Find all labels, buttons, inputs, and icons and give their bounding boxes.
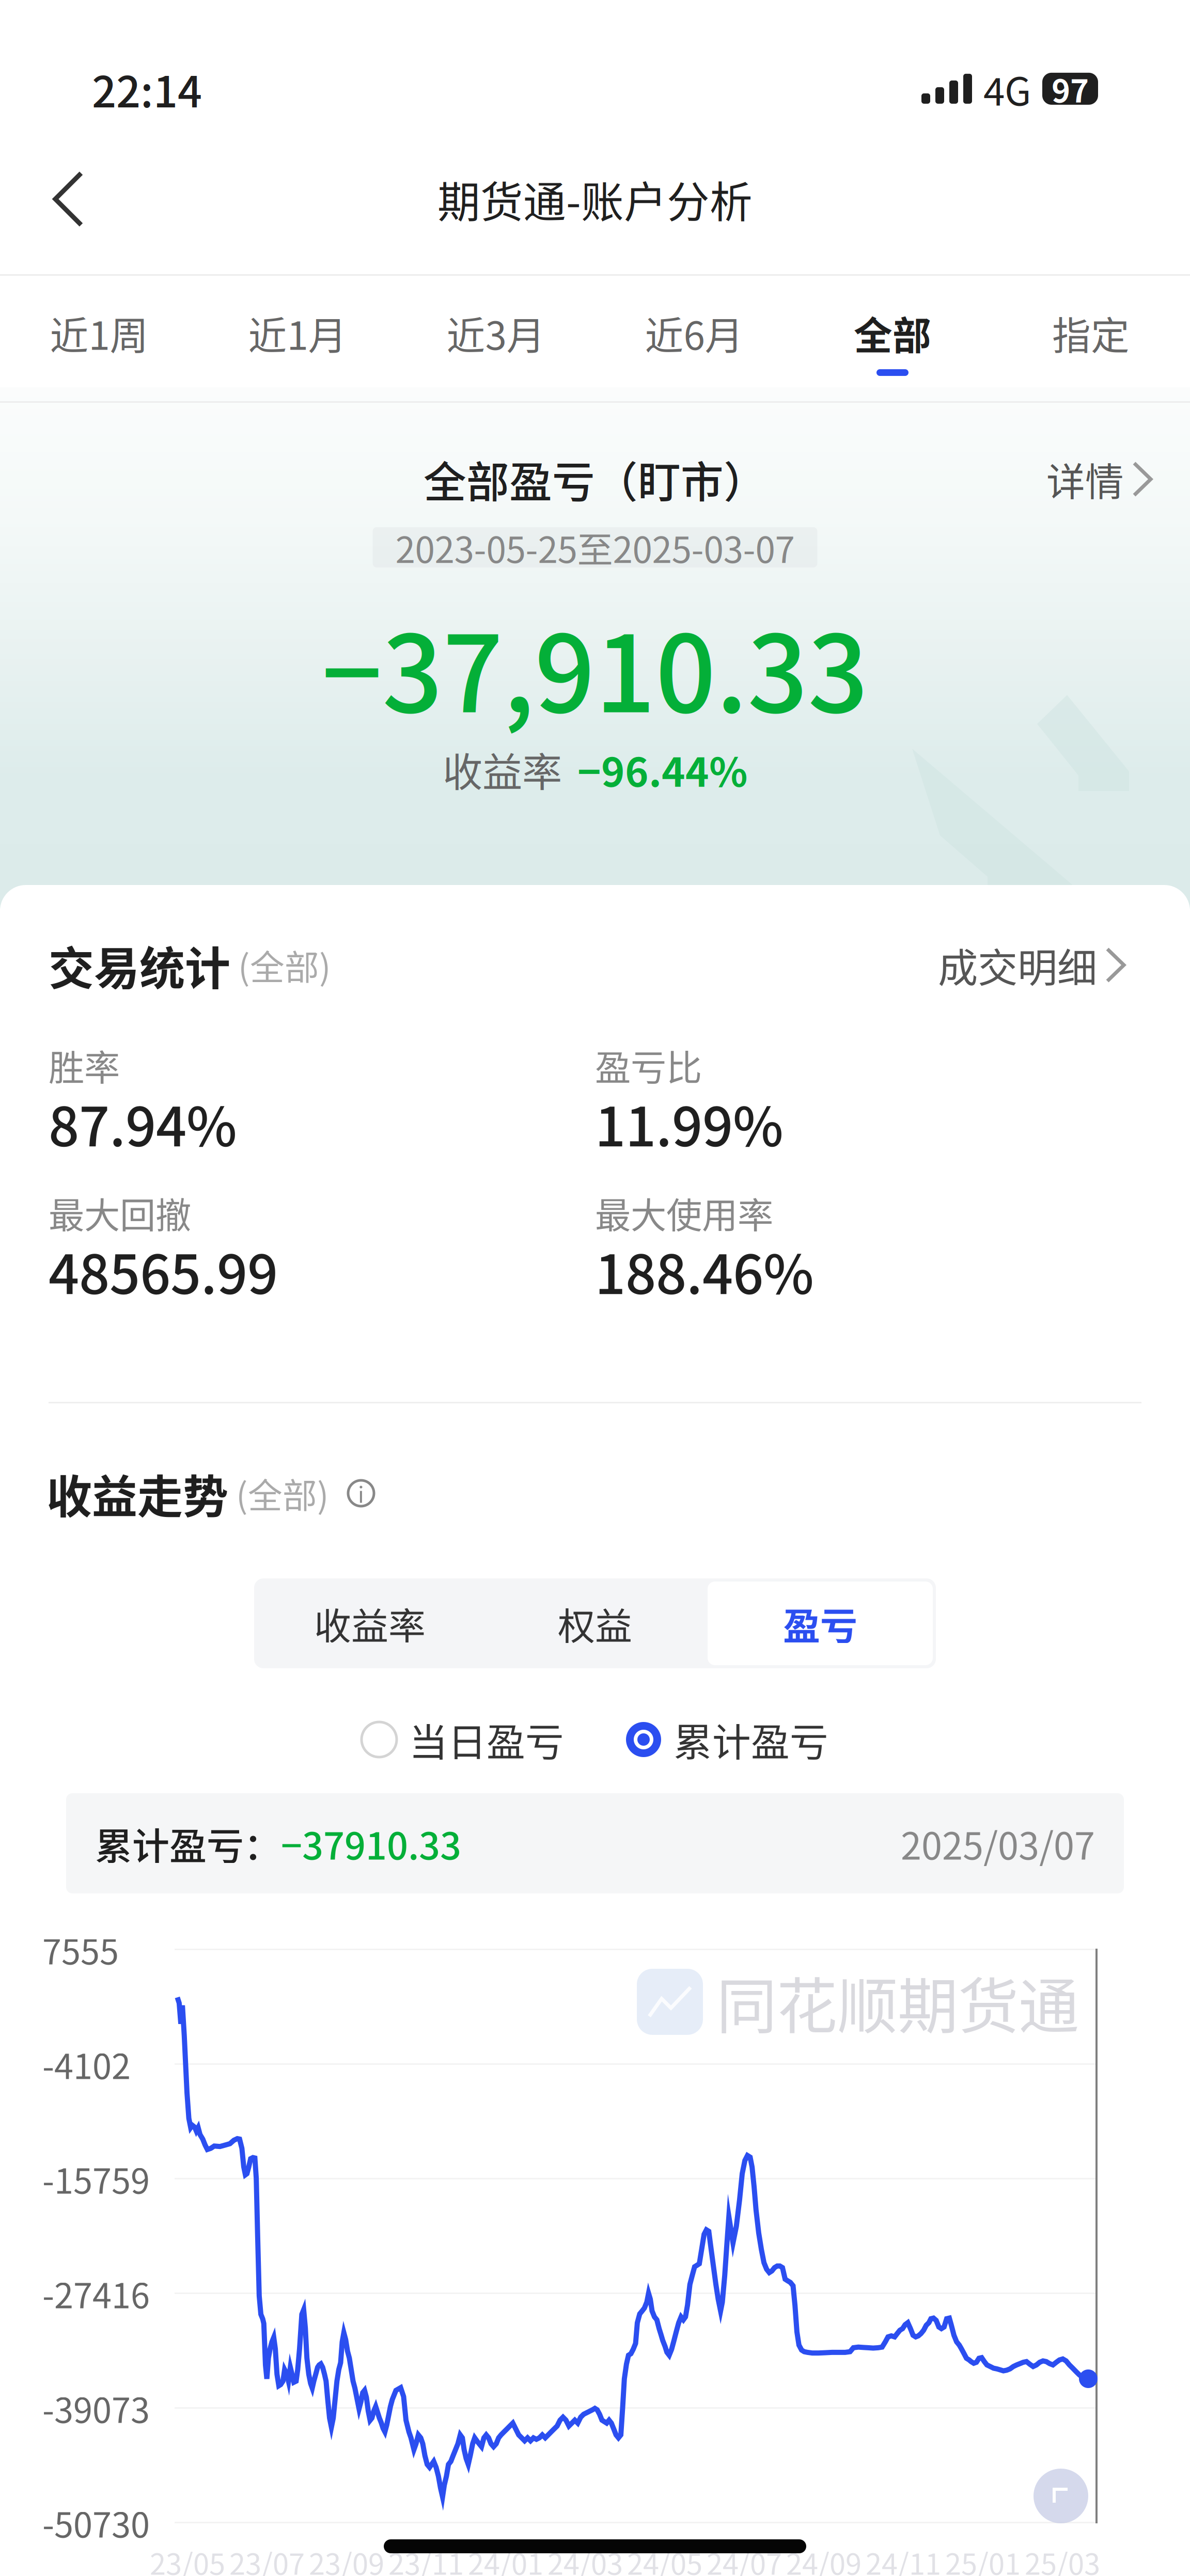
button[interactable]: 成交明细	[938, 928, 1124, 1002]
button[interactable]: 详情	[1046, 444, 1190, 514]
staticText: 指定	[1052, 305, 1130, 361]
staticText: 累计盈亏：	[95, 1816, 281, 1870]
staticText: 24/05	[627, 2541, 702, 2576]
staticText: 23/07	[229, 2541, 305, 2576]
staticText: 收益走势	[46, 1460, 228, 1526]
staticText: 近3月	[447, 305, 545, 361]
staticText: 当日盈亏	[409, 1712, 564, 1767]
staticText: 87.94%	[49, 1084, 237, 1162]
button[interactable]: 近3月	[397, 287, 595, 390]
staticText: 48565.99	[49, 1232, 278, 1310]
staticText: (全部)	[228, 1468, 329, 1518]
staticText: 188.46%	[595, 1232, 814, 1310]
staticText: 期货通-账户分析	[437, 168, 753, 230]
staticText: 23/05	[150, 2541, 225, 2576]
staticText: 23/11	[388, 2541, 464, 2576]
staticText: 24/11	[866, 2541, 941, 2576]
button[interactable]: 收益率	[257, 1582, 482, 1665]
staticText: 25/03	[1025, 2541, 1100, 2576]
staticText: 近6月	[645, 305, 743, 361]
button[interactable]: 近1月	[198, 287, 397, 390]
staticText: 2023-05-25至2025-03-07	[395, 521, 795, 573]
staticText: 4G	[983, 61, 1031, 117]
staticText: 24/07	[707, 2541, 782, 2576]
staticText: 全部盈亏（盯市）	[424, 448, 766, 510]
staticText: 24/09	[786, 2541, 862, 2576]
staticText: 收益率	[314, 1596, 426, 1650]
staticText: -27416	[42, 2268, 150, 2318]
staticText: −96.44%	[577, 740, 747, 798]
button[interactable]: Back	[32, 163, 104, 235]
staticText: 11.99%	[595, 1084, 784, 1162]
staticText: 97	[1052, 66, 1089, 112]
staticText: 盈亏	[783, 1596, 857, 1650]
button[interactable]: Info	[329, 1475, 374, 1512]
button[interactable]: 近1周	[0, 287, 198, 390]
staticText: −37910.33	[281, 1816, 461, 1870]
button[interactable]: 盈亏	[708, 1582, 933, 1665]
staticText: -50730	[42, 2498, 150, 2547]
button[interactable]: 近6月	[595, 287, 793, 390]
staticText: 24/01	[468, 2541, 543, 2576]
staticText: 权益	[558, 1596, 632, 1650]
staticText: 7555	[42, 1924, 119, 1974]
staticText: 同花顺期货通	[716, 1958, 1079, 2046]
staticText: 23/09	[309, 2541, 384, 2576]
button[interactable]: 权益	[482, 1582, 708, 1665]
staticText: 胜率	[49, 1039, 120, 1091]
button[interactable]: 全部	[793, 287, 992, 390]
staticText: 收益率	[443, 740, 562, 798]
staticText: -4102	[42, 2039, 131, 2089]
staticText: 详情	[1046, 451, 1124, 507]
staticText: 近1周	[50, 305, 148, 361]
staticText: 24/03	[547, 2541, 623, 2576]
button[interactable]: 指定	[992, 287, 1190, 390]
staticText: 近1月	[248, 305, 347, 361]
staticText: i	[358, 1477, 364, 1509]
staticText: 成交明细	[938, 936, 1097, 994]
staticText: 2025/03/07	[901, 1816, 1095, 1870]
button[interactable]: 当日盈亏	[362, 1703, 564, 1776]
staticText: 盈亏比	[595, 1039, 702, 1091]
button[interactable]: 累计盈亏	[626, 1703, 828, 1776]
staticText: −37,910.33	[322, 589, 868, 743]
staticText: -15759	[42, 2154, 150, 2204]
staticText: 22:14	[92, 58, 202, 120]
staticText: 最大使用率	[595, 1187, 773, 1239]
button[interactable]: Fullscreen	[1034, 2469, 1088, 2523]
staticText: (全部)	[230, 940, 331, 990]
staticText: 25/01	[945, 2541, 1021, 2576]
staticText: 全部	[854, 305, 931, 361]
staticText: 累计盈亏	[674, 1712, 828, 1767]
staticText: 交易统计	[49, 932, 230, 998]
staticText: -39073	[42, 2383, 150, 2433]
staticText: 最大回撤	[49, 1187, 191, 1239]
